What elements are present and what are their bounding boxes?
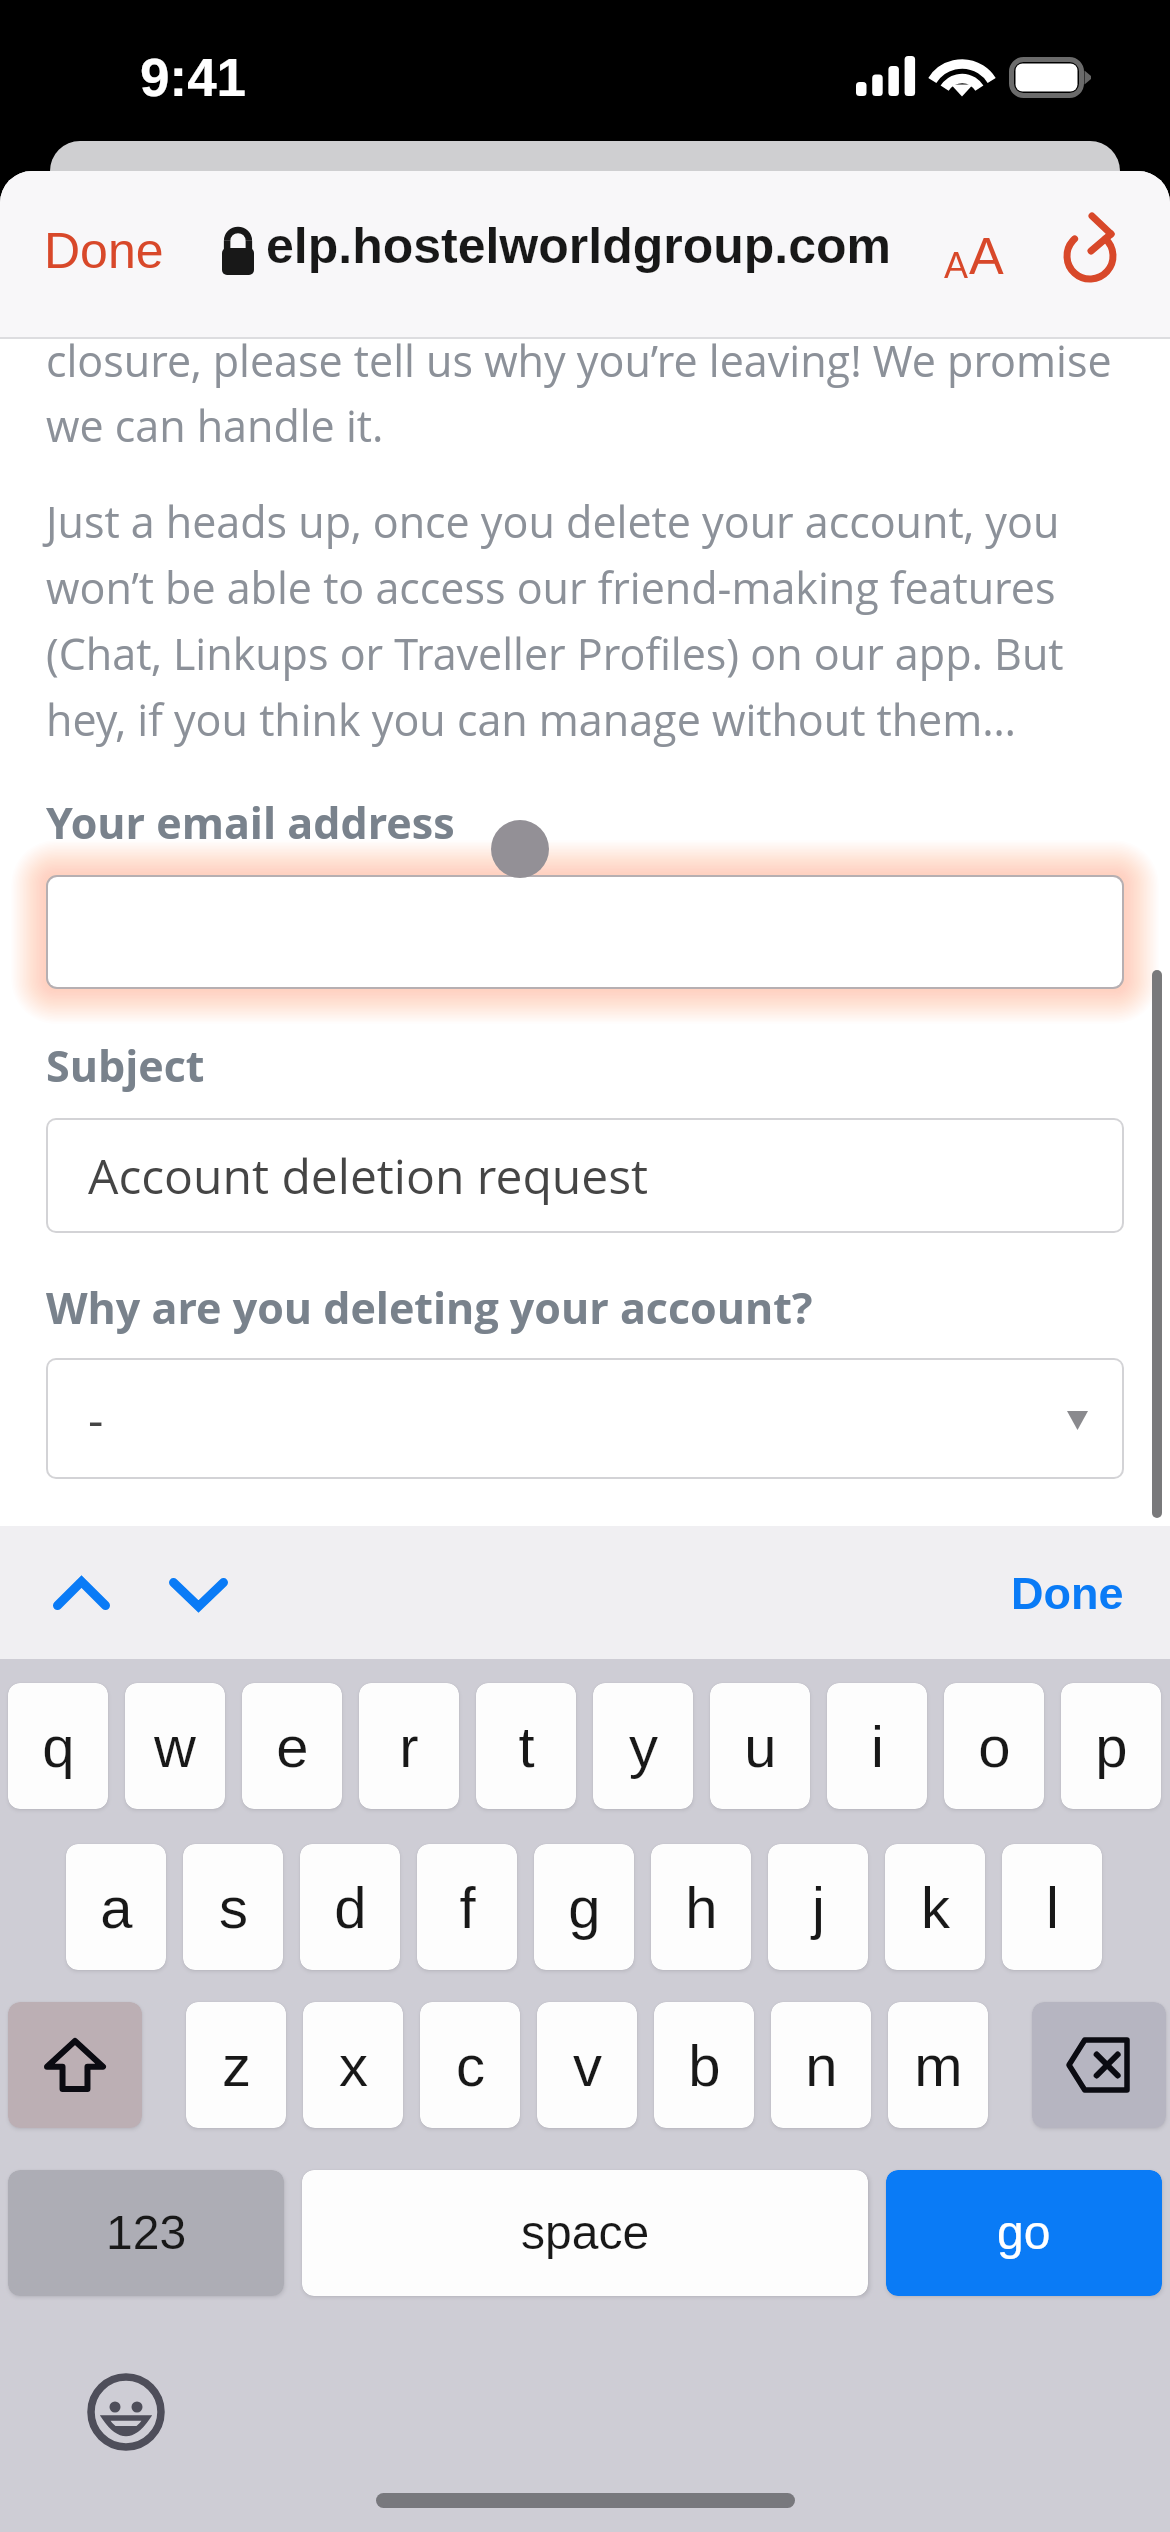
staticText: 9:41 — [140, 48, 247, 107]
button[interactable]: c — [420, 2002, 520, 2128]
button[interactable]: 123 — [8, 2170, 284, 2296]
button[interactable]: v — [537, 2002, 637, 2128]
staticText: z — [222, 2033, 251, 2098]
button[interactable]: s — [183, 1844, 283, 1970]
button[interactable]: h — [651, 1844, 751, 1970]
button[interactable]: x — [303, 2002, 403, 2128]
staticText: v — [573, 2033, 602, 2098]
staticText: c — [456, 2033, 485, 2098]
staticText: d — [334, 1875, 367, 1940]
staticText: y — [629, 1714, 658, 1779]
staticText: space — [521, 2206, 650, 2260]
button[interactable]: j — [768, 1844, 868, 1970]
staticText: p — [1095, 1714, 1128, 1779]
staticText: Done — [44, 223, 164, 279]
staticText: g — [568, 1875, 601, 1940]
staticText: n — [805, 2033, 838, 2098]
staticText: u — [744, 1714, 777, 1779]
staticText: i — [871, 1714, 884, 1779]
button[interactable]: g — [534, 1844, 634, 1970]
staticText: Done — [1011, 1568, 1124, 1618]
button[interactable]: go — [886, 2170, 1162, 2296]
button[interactable]: d — [300, 1844, 400, 1970]
staticText: e — [276, 1714, 309, 1779]
button[interactable]: Account deletion request — [48, 1120, 1122, 1231]
staticText: Your email address — [46, 793, 455, 852]
button[interactable]: z — [186, 2002, 286, 2128]
staticText: - — [88, 1386, 104, 1451]
staticText: b — [688, 2033, 721, 2098]
button[interactable]: Done — [991, 1550, 1144, 1636]
staticText: go — [997, 2206, 1051, 2260]
staticText: o — [978, 1714, 1011, 1779]
staticText: elp.hostelworldgroup.com — [266, 218, 892, 274]
button[interactable]: Previous form field — [34, 1536, 134, 1648]
staticText: t — [518, 1714, 535, 1779]
button[interactable]: p — [1061, 1683, 1161, 1809]
button[interactable]: q — [8, 1683, 108, 1809]
staticText: w — [154, 1714, 196, 1779]
button[interactable]: m — [888, 2002, 988, 2128]
button[interactable]: space — [302, 2170, 868, 2296]
staticText: j — [812, 1875, 825, 1940]
staticText: closure, please tell us why you’re leavi… — [46, 331, 1121, 455]
button[interactable]: Emoji keyboard — [82, 2368, 170, 2456]
button[interactable]: Shift — [8, 2002, 142, 2128]
staticText: k — [921, 1875, 950, 1940]
button[interactable]: t — [476, 1683, 576, 1809]
button[interactable]: Next form field — [150, 1536, 250, 1648]
button[interactable]: a — [66, 1844, 166, 1970]
staticText: 123 — [106, 2206, 187, 2260]
button[interactable]: y — [593, 1683, 693, 1809]
button[interactable]: Text size options — [928, 209, 1020, 301]
staticText: r — [399, 1714, 419, 1779]
staticText: A — [944, 245, 969, 285]
staticText: m — [914, 2033, 963, 2098]
button[interactable]: b — [654, 2002, 754, 2128]
staticText: Account deletion request — [88, 1143, 649, 1208]
button[interactable]: l — [1002, 1844, 1102, 1970]
button[interactable]: - — [48, 1360, 1122, 1477]
staticText: f — [459, 1875, 476, 1940]
button[interactable]: Done — [18, 197, 190, 305]
button[interactable]: f — [417, 1844, 517, 1970]
staticText: l — [1046, 1875, 1059, 1940]
button[interactable]: n — [771, 2002, 871, 2128]
staticText: x — [339, 2033, 368, 2098]
button[interactable]: w — [125, 1683, 225, 1809]
staticText: Just a heads up, once you delete your ac… — [46, 492, 1064, 748]
staticText: A — [969, 227, 1004, 285]
staticText: a — [100, 1875, 133, 1940]
staticText: h — [685, 1875, 718, 1940]
button[interactable]: Backspace — [1032, 2002, 1166, 2128]
button[interactable]: Reload page — [1042, 201, 1138, 297]
staticText: Subject — [46, 1036, 205, 1095]
button[interactable]: k — [885, 1844, 985, 1970]
button[interactable]: r — [359, 1683, 459, 1809]
button[interactable]: e — [242, 1683, 342, 1809]
button[interactable]: u — [710, 1683, 810, 1809]
staticText: Why are you deleting your account? — [46, 1278, 813, 1337]
button[interactable]: o — [944, 1683, 1044, 1809]
button[interactable]: i — [827, 1683, 927, 1809]
staticText: q — [42, 1714, 75, 1779]
staticText: s — [219, 1875, 248, 1940]
